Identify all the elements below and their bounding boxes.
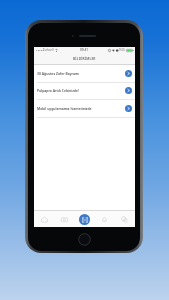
button[interactable]: Scan — [75, 211, 94, 227]
button[interactable]: Camera — [55, 211, 74, 227]
staticText: %50 — [119, 48, 125, 52]
staticText: 30 Ağustos Zafer Bayramı — [37, 71, 80, 76]
staticText: Pulpapro Artık Cebinizde! — [37, 88, 79, 93]
staticText: Turkcell — [43, 48, 54, 52]
staticText: Mobil uygulamamız hizmetinizde — [37, 106, 92, 111]
staticText: BİLDİRİMLER — [73, 56, 96, 60]
button[interactable]: Messages — [115, 211, 134, 227]
button[interactable]: Mobil uygulamamız hizmetinizde — [34, 100, 135, 117]
staticText: 09:41 — [80, 48, 88, 52]
button[interactable]: Pulpapro Artık Cebinizde! — [34, 82, 135, 99]
button[interactable]: 30 Ağustos Zafer Bayramı — [34, 65, 135, 82]
button[interactable]: Home — [35, 211, 54, 227]
button[interactable]: Notifications — [95, 211, 114, 227]
